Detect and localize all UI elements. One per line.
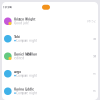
staticText: Sat [93,37,96,40]
staticText: Fri [93,89,96,93]
staticText: Fri [93,72,96,75]
staticText: 10:04 [3,5,12,9]
staticText: edited [14,56,24,60]
staticText: Compare night [16,74,37,77]
button[interactable]: Daniel McMillan [2,47,98,65]
staticText: 08:52 [87,19,96,23]
staticText: Karina Liddle [14,88,34,91]
staticText: Daniel McMillan [14,53,37,56]
button[interactable]: Kristen Wright [2,12,98,30]
staticText: Sat [93,54,96,58]
button[interactable]: Karina Liddle [2,82,98,100]
staticText: Good job! [14,21,29,25]
staticText: Compare night [16,39,37,42]
staticText: Argo [14,70,21,74]
staticText: Kristen Wright [14,18,35,21]
staticText: Compare night [16,91,37,95]
button[interactable]: Tobi [2,30,98,47]
staticText: Tobi [14,35,20,39]
button[interactable]: Argo [2,65,98,82]
